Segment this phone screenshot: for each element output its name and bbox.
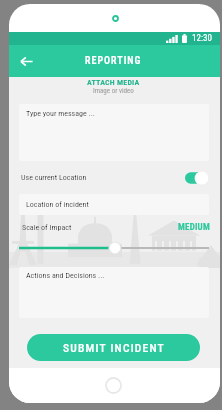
staticText: Scale of Impact [22, 223, 72, 232]
staticText: Use current Location [21, 173, 87, 182]
staticText: MEDIUM [178, 222, 210, 233]
button[interactable]: Back [15, 50, 37, 72]
staticText: Type your message ... [26, 109, 95, 118]
button[interactable]: Use current Location [21, 161, 209, 194]
staticText: REPORTING [85, 55, 142, 67]
button[interactable]: Type your message ... [19, 104, 209, 161]
staticText: SUBMIT INCIDENT [63, 341, 165, 354]
staticText: ATTACH MEDIA [87, 78, 140, 87]
button[interactable]: ATTACH MEDIA [9, 77, 220, 104]
button[interactable]: Actions and Decisions ... [19, 267, 209, 318]
staticText: 12:30 [192, 33, 212, 44]
button[interactable] [19, 240, 209, 256]
staticText: Location of incident [26, 200, 89, 209]
button[interactable]: SUBMIT INCIDENT [27, 334, 200, 361]
button[interactable]: Location of incident [19, 194, 209, 215]
staticText: Actions and Decisions ... [26, 271, 105, 280]
staticText: Image or video [93, 87, 134, 95]
